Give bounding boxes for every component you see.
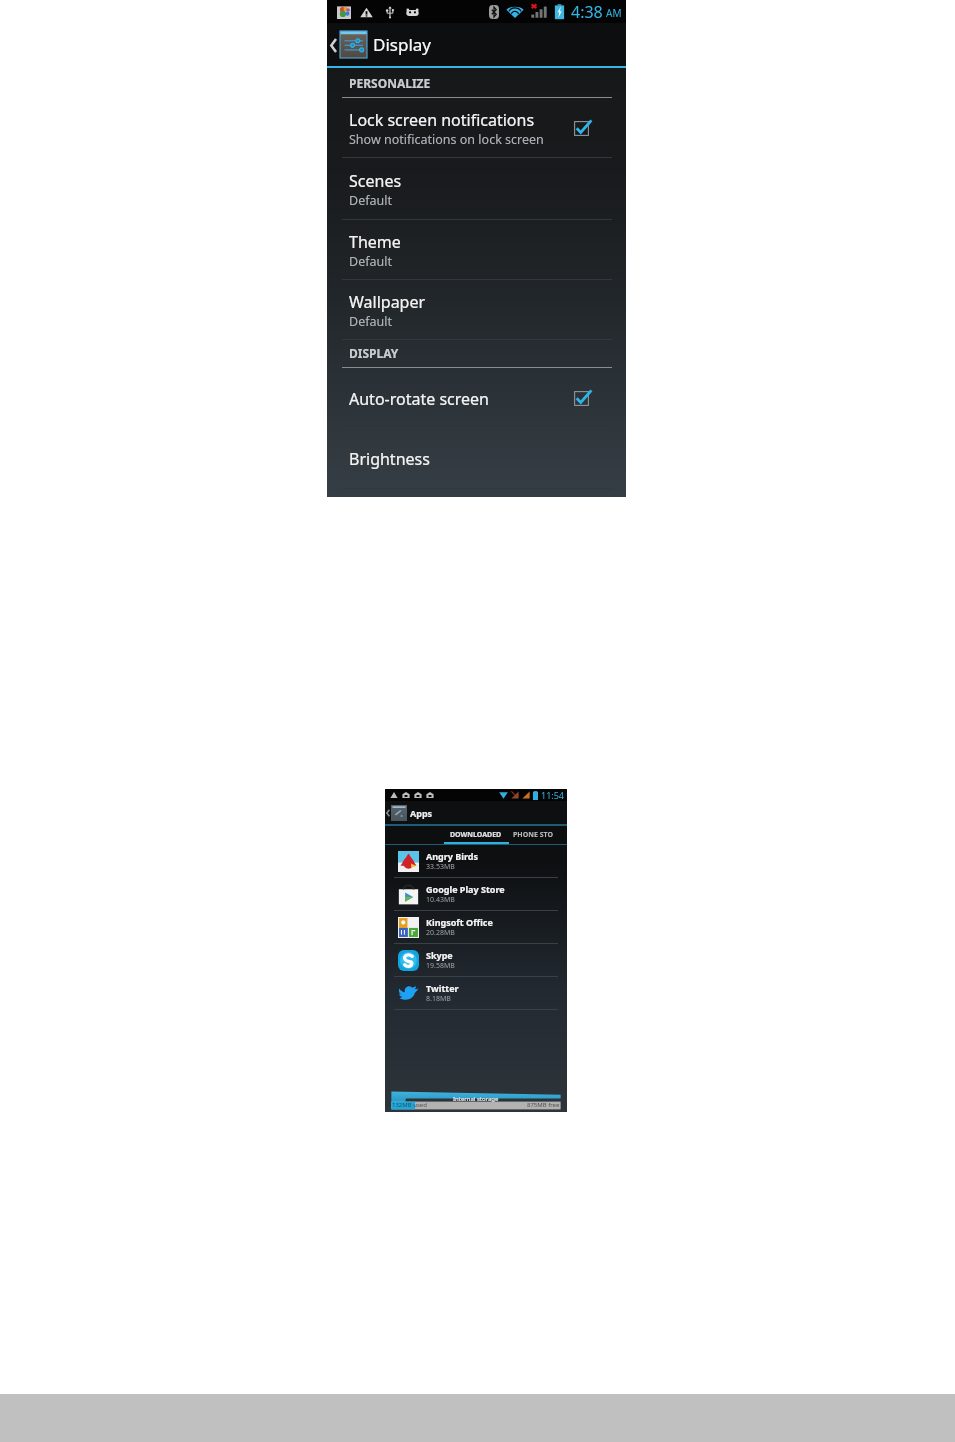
staticText: Display: [373, 33, 431, 56]
staticText: DISPLAY: [349, 345, 399, 361]
staticText: Lock screen notifications: [349, 109, 535, 131]
staticText: 132MB used: [392, 1101, 427, 1109]
button[interactable]: Brightness: [327, 429, 626, 489]
staticText: Angry Birds: [426, 850, 478, 862]
staticText: Internal storage: [453, 1095, 499, 1103]
staticText: 20.28MB: [426, 928, 455, 938]
staticText: 875MB free: [527, 1101, 560, 1109]
button[interactable]: Auto-rotate screen: [327, 368, 626, 429]
button[interactable]: Scenes: [327, 158, 626, 220]
button[interactable]: DOWNLOADED: [443, 826, 509, 844]
staticText: Default: [349, 192, 392, 209]
staticText: AM: [606, 6, 622, 20]
staticText: 8.18MB: [426, 994, 451, 1004]
staticText: PERSONALIZE: [349, 75, 431, 91]
button[interactable]: Twitter: [385, 977, 567, 1010]
button[interactable]: Auto-rotate screen: [571, 388, 592, 409]
staticText: Theme: [349, 231, 401, 253]
button[interactable]: Theme: [327, 220, 626, 280]
button[interactable]: Google Play Store: [385, 878, 567, 911]
staticText: Wallpaper: [349, 291, 426, 313]
staticText: Auto-rotate screen: [349, 388, 489, 410]
staticText: 11:54: [541, 789, 565, 801]
staticText: 33.53MB: [426, 862, 455, 872]
button[interactable]: Navigate up, Apps: [385, 805, 433, 821]
staticText: Show notifications on lock screen: [349, 131, 544, 148]
staticText: Kingsoft Office: [426, 916, 493, 928]
button[interactable]: Kingsoft Office: [385, 911, 567, 944]
staticText: Scenes: [349, 170, 402, 192]
button[interactable]: Lock screen notifications: [571, 118, 592, 139]
button[interactable]: Wallpaper: [327, 280, 626, 340]
staticText: 10.43MB: [426, 895, 455, 905]
staticText: Default: [349, 313, 392, 330]
staticText: Twitter: [426, 982, 459, 994]
staticText: 19.58MB: [426, 961, 455, 971]
button[interactable]: Navigate up, Display: [327, 31, 431, 58]
staticText: PHONE STO: [513, 830, 553, 840]
staticText: Google Play Store: [426, 883, 505, 895]
button[interactable]: Lock screen notifications: [327, 98, 626, 158]
staticText: DOWNLOADED: [450, 830, 502, 840]
staticText: Skype: [426, 949, 453, 961]
staticText: Apps: [410, 807, 433, 819]
staticText: Brightness: [349, 448, 430, 470]
button[interactable]: PHONE STO: [513, 826, 579, 844]
button[interactable]: Skype: [385, 944, 567, 977]
button[interactable]: Angry Birds: [385, 845, 567, 878]
staticText: 4:38: [571, 1, 603, 23]
staticText: Default: [349, 253, 392, 270]
